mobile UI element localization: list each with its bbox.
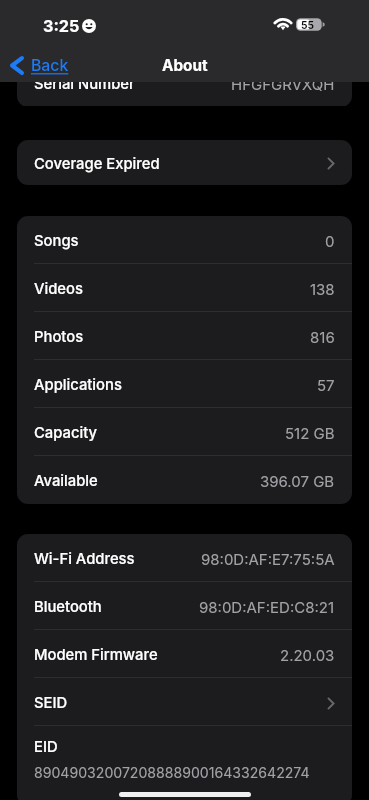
button[interactable]: SEID xyxy=(17,678,352,726)
staticText: 512 GB xyxy=(285,424,335,442)
staticText: Back xyxy=(31,56,69,75)
button[interactable]: Modem Firmware xyxy=(17,630,352,678)
staticText: SEID xyxy=(34,694,68,712)
button[interactable]: Bluetooth xyxy=(17,582,352,630)
staticText: 98:0D:AF:E7:75:5A xyxy=(201,550,335,568)
button[interactable]: Serial Number xyxy=(17,59,352,106)
staticText: Coverage Expired xyxy=(34,155,160,173)
button[interactable]: Songs xyxy=(17,216,352,264)
staticText: Capacity xyxy=(34,424,98,442)
button[interactable]: EID xyxy=(17,726,352,800)
button[interactable]: Available xyxy=(17,456,352,504)
button[interactable]: Coverage Expired xyxy=(17,140,352,185)
other: Back xyxy=(10,56,24,75)
staticText: 138 xyxy=(310,280,335,298)
staticText: 89049032007208888900164332642274 xyxy=(34,764,310,781)
staticText: EID xyxy=(34,738,58,756)
staticText: 2.20.03 xyxy=(280,646,335,664)
button[interactable]: Back xyxy=(10,56,69,75)
staticText: 57 xyxy=(317,376,335,394)
staticText: Songs xyxy=(34,232,79,250)
staticText: HFGFGRVXQH xyxy=(231,75,335,93)
staticText: Bluetooth xyxy=(34,598,102,616)
staticText: Serial Number xyxy=(34,75,135,93)
staticText: 396.07 GB xyxy=(260,472,335,490)
staticText: Videos xyxy=(34,280,83,298)
staticText: 98:0D:AF:ED:C8:21 xyxy=(199,598,335,616)
staticText: Wi-Fi Address xyxy=(34,550,135,568)
button[interactable]: Videos xyxy=(17,264,352,312)
button[interactable]: Wi-Fi Address xyxy=(17,534,352,582)
button[interactable]: Photos xyxy=(17,312,352,360)
staticText: 816 xyxy=(310,328,335,346)
staticText: 3:25 xyxy=(43,16,80,36)
button[interactable]: Applications xyxy=(17,360,352,408)
staticText: Photos xyxy=(34,328,84,346)
staticText: 0 xyxy=(325,232,335,250)
staticText: Applications xyxy=(34,376,122,394)
staticText: 55 xyxy=(301,19,315,31)
button[interactable]: Capacity xyxy=(17,408,352,456)
staticText: About xyxy=(162,56,208,75)
staticText: Modem Firmware xyxy=(34,646,158,664)
staticText: Available xyxy=(34,472,98,490)
